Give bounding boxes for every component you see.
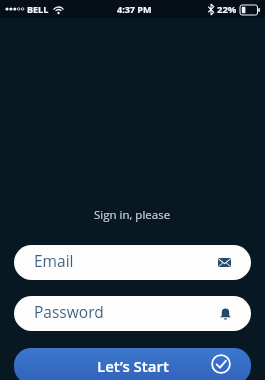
staticText: BELL	[27, 3, 49, 15]
staticText: Sign in, please	[94, 207, 171, 223]
staticText: 22%	[217, 3, 237, 16]
staticText: Email	[34, 250, 74, 271]
staticText: Let’s Start	[97, 356, 169, 376]
staticText: Password	[34, 301, 104, 322]
staticText: 4:37 PM	[117, 3, 152, 15]
button[interactable]: Email	[14, 245, 251, 280]
button[interactable]: Let’s Start	[14, 348, 251, 380]
button[interactable]: Password	[14, 296, 251, 331]
